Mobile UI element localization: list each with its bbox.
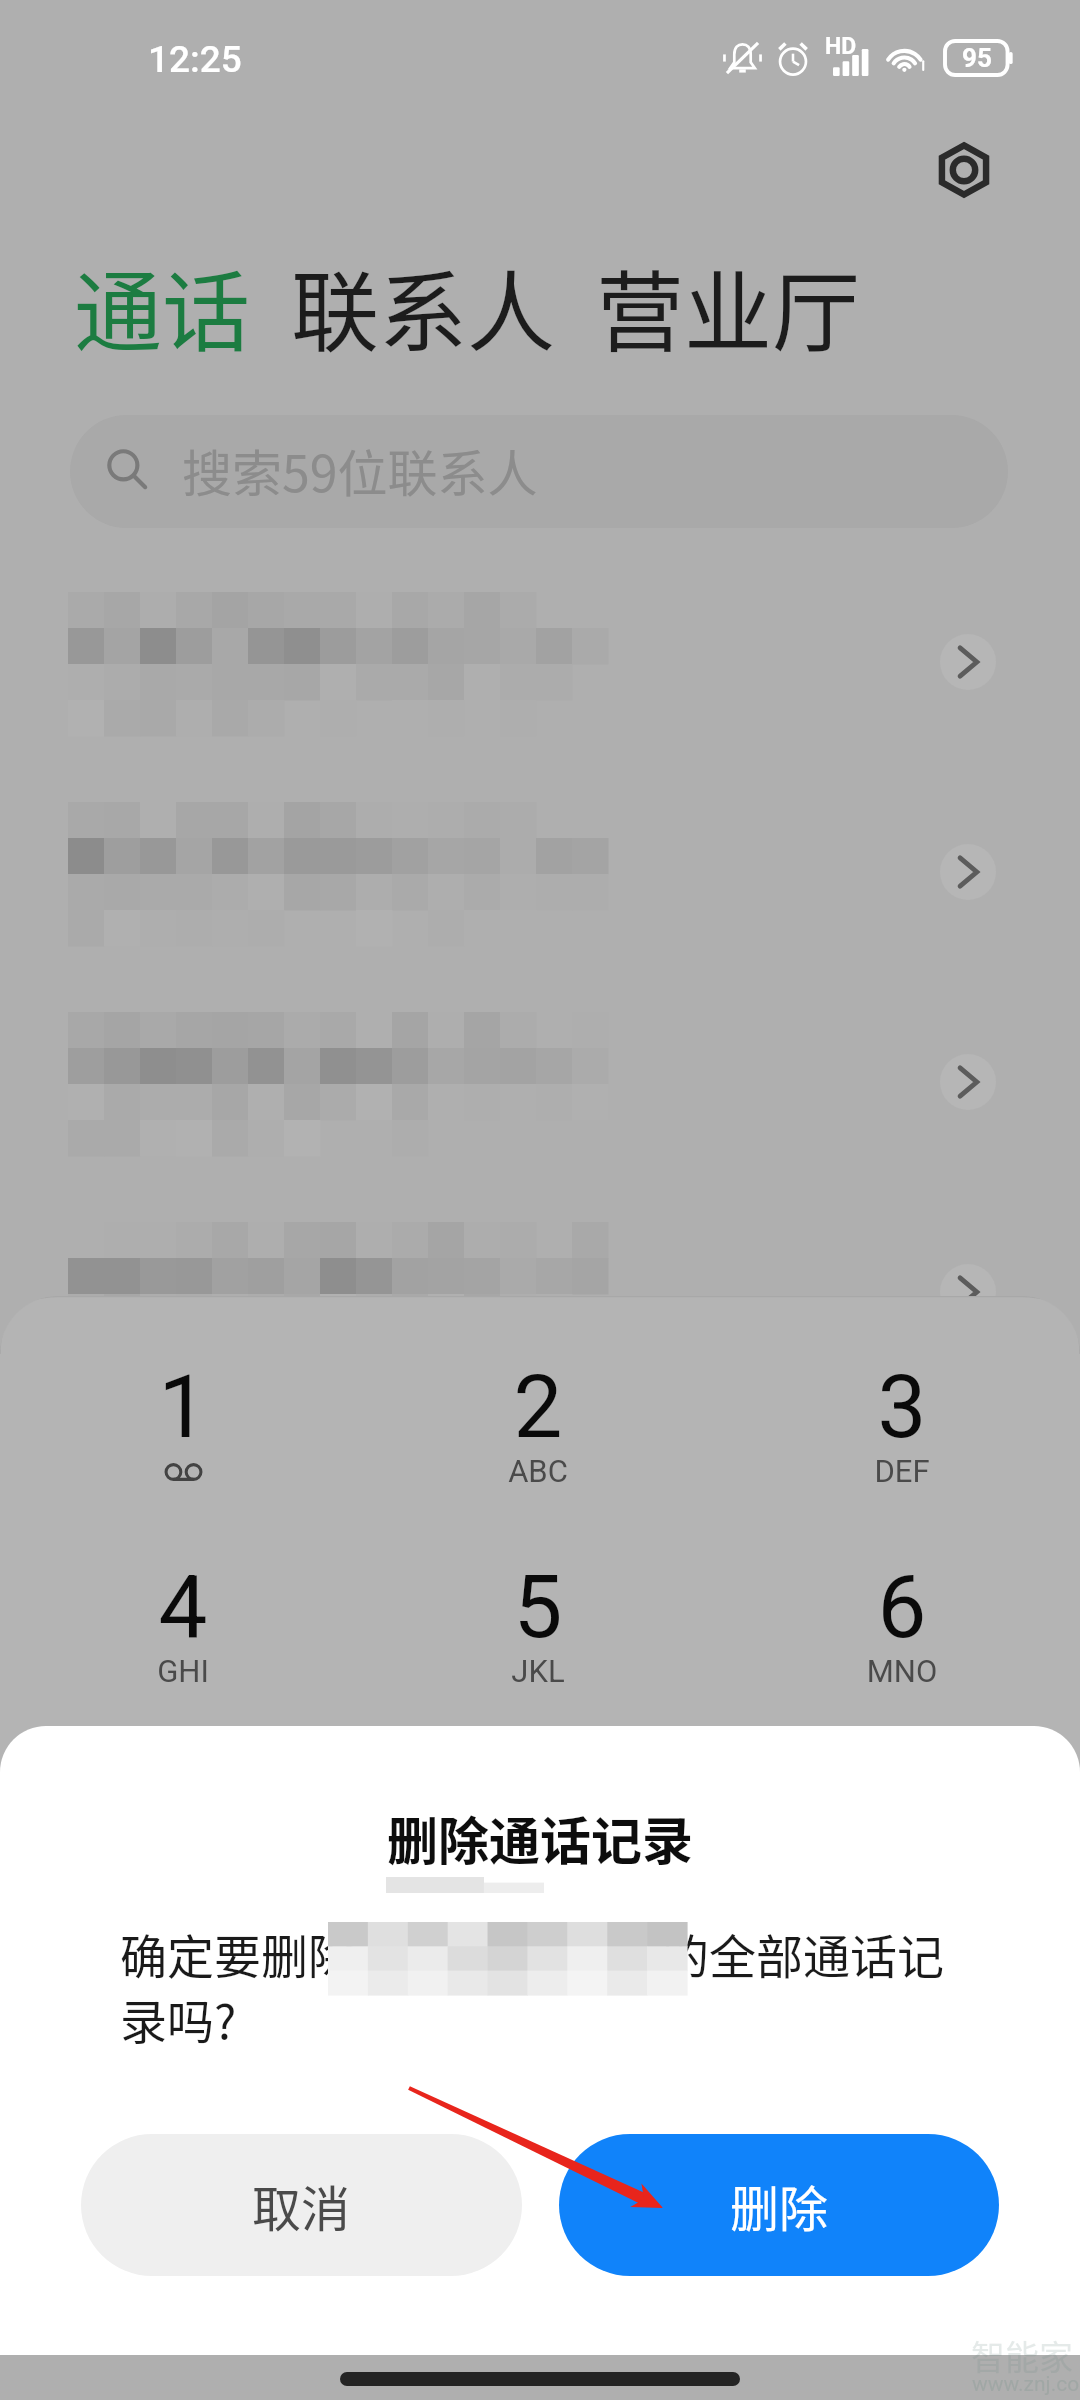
button[interactable]: Call details (0, 802, 1080, 1012)
button[interactable]: 删除 (559, 2134, 999, 2276)
staticText: 联系人 (291, 242, 556, 369)
staticText: GHI (63, 1653, 303, 1689)
button[interactable]: 联系人 (291, 242, 556, 369)
staticText: 4 (63, 1556, 303, 1658)
button[interactable]: 营业厅 (596, 242, 861, 369)
staticText: HD (825, 33, 857, 60)
button[interactable]: 1 (63, 1356, 303, 1536)
staticText: MNO (782, 1653, 1022, 1689)
staticText: 删除通话记录 (0, 1801, 1080, 1875)
button[interactable]: 搜索59位联系人 (70, 415, 1008, 528)
staticText: 6 (782, 1556, 1022, 1658)
button[interactable]: Call details (940, 1054, 996, 1110)
staticText: www.znj.com (972, 2372, 1080, 2397)
staticText: 1 (63, 1356, 303, 1458)
staticText: 2 (418, 1356, 658, 1458)
button[interactable]: 通话 (74, 242, 251, 369)
staticText: 3 (782, 1356, 1022, 1458)
button[interactable]: 6 (782, 1556, 1022, 1736)
button[interactable]: 2 (418, 1356, 658, 1536)
staticText: DEF (782, 1453, 1022, 1489)
staticText: 搜索59位联系人 (182, 434, 538, 506)
staticText: 12:25 (148, 38, 242, 81)
staticText: ABC (418, 1453, 658, 1489)
staticText: 通话 (74, 242, 251, 369)
button[interactable]: Call details (940, 634, 996, 690)
staticText: 的全部通话记 (662, 1919, 944, 1987)
staticText: 删除 (730, 2170, 829, 2241)
button[interactable]: Call details (940, 1264, 996, 1320)
button[interactable]: Call details (940, 844, 996, 900)
button[interactable]: Call details (0, 1222, 1080, 1432)
staticText: 确定要删除 (120, 1919, 355, 1987)
staticText: 95 (962, 43, 992, 73)
button[interactable]: Call details (0, 1012, 1080, 1222)
staticText: 5 (418, 1556, 658, 1658)
button[interactable]: 取消 (81, 2134, 522, 2276)
staticText: 录吗? (120, 1984, 237, 2052)
staticText: JKL (418, 1653, 658, 1689)
button[interactable]: 3 (782, 1356, 1022, 1536)
staticText: 智能家 (971, 2331, 1073, 2380)
staticText: 营业厅 (596, 242, 861, 369)
staticText: 取消 (252, 2170, 351, 2241)
button[interactable]: 4 (63, 1556, 303, 1736)
button[interactable]: Call details (0, 592, 1080, 802)
button[interactable]: 5 (418, 1556, 658, 1736)
button[interactable]: Settings (928, 134, 1000, 206)
